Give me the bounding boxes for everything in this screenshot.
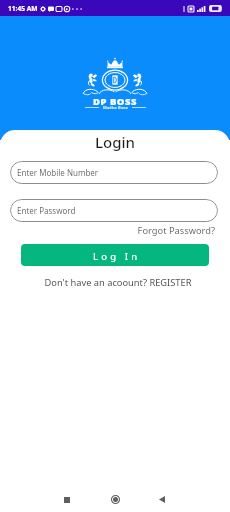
button[interactable]: Home — [104, 487, 126, 512]
staticText: 11:45 AM — [8, 4, 38, 13]
button[interactable]: Forgot Password? — [0, 224, 230, 237]
staticText: Log In — [93, 250, 141, 263]
button[interactable]: Back — [151, 487, 173, 512]
staticText: DP BOSS — [93, 95, 137, 108]
button[interactable]: Log In — [21, 244, 209, 266]
staticText: Enter Password — [17, 205, 76, 216]
button[interactable]: Recent apps — [56, 487, 78, 512]
button[interactable]: Don't have an acoount? REGISTER — [0, 276, 230, 289]
button[interactable]: Enter Mobile Number — [10, 161, 218, 184]
staticText: Login — [0, 132, 230, 152]
staticText: Matka Boss — [103, 105, 128, 110]
staticText: Enter Mobile Number — [17, 167, 99, 178]
button[interactable]: Enter Password — [10, 199, 218, 222]
